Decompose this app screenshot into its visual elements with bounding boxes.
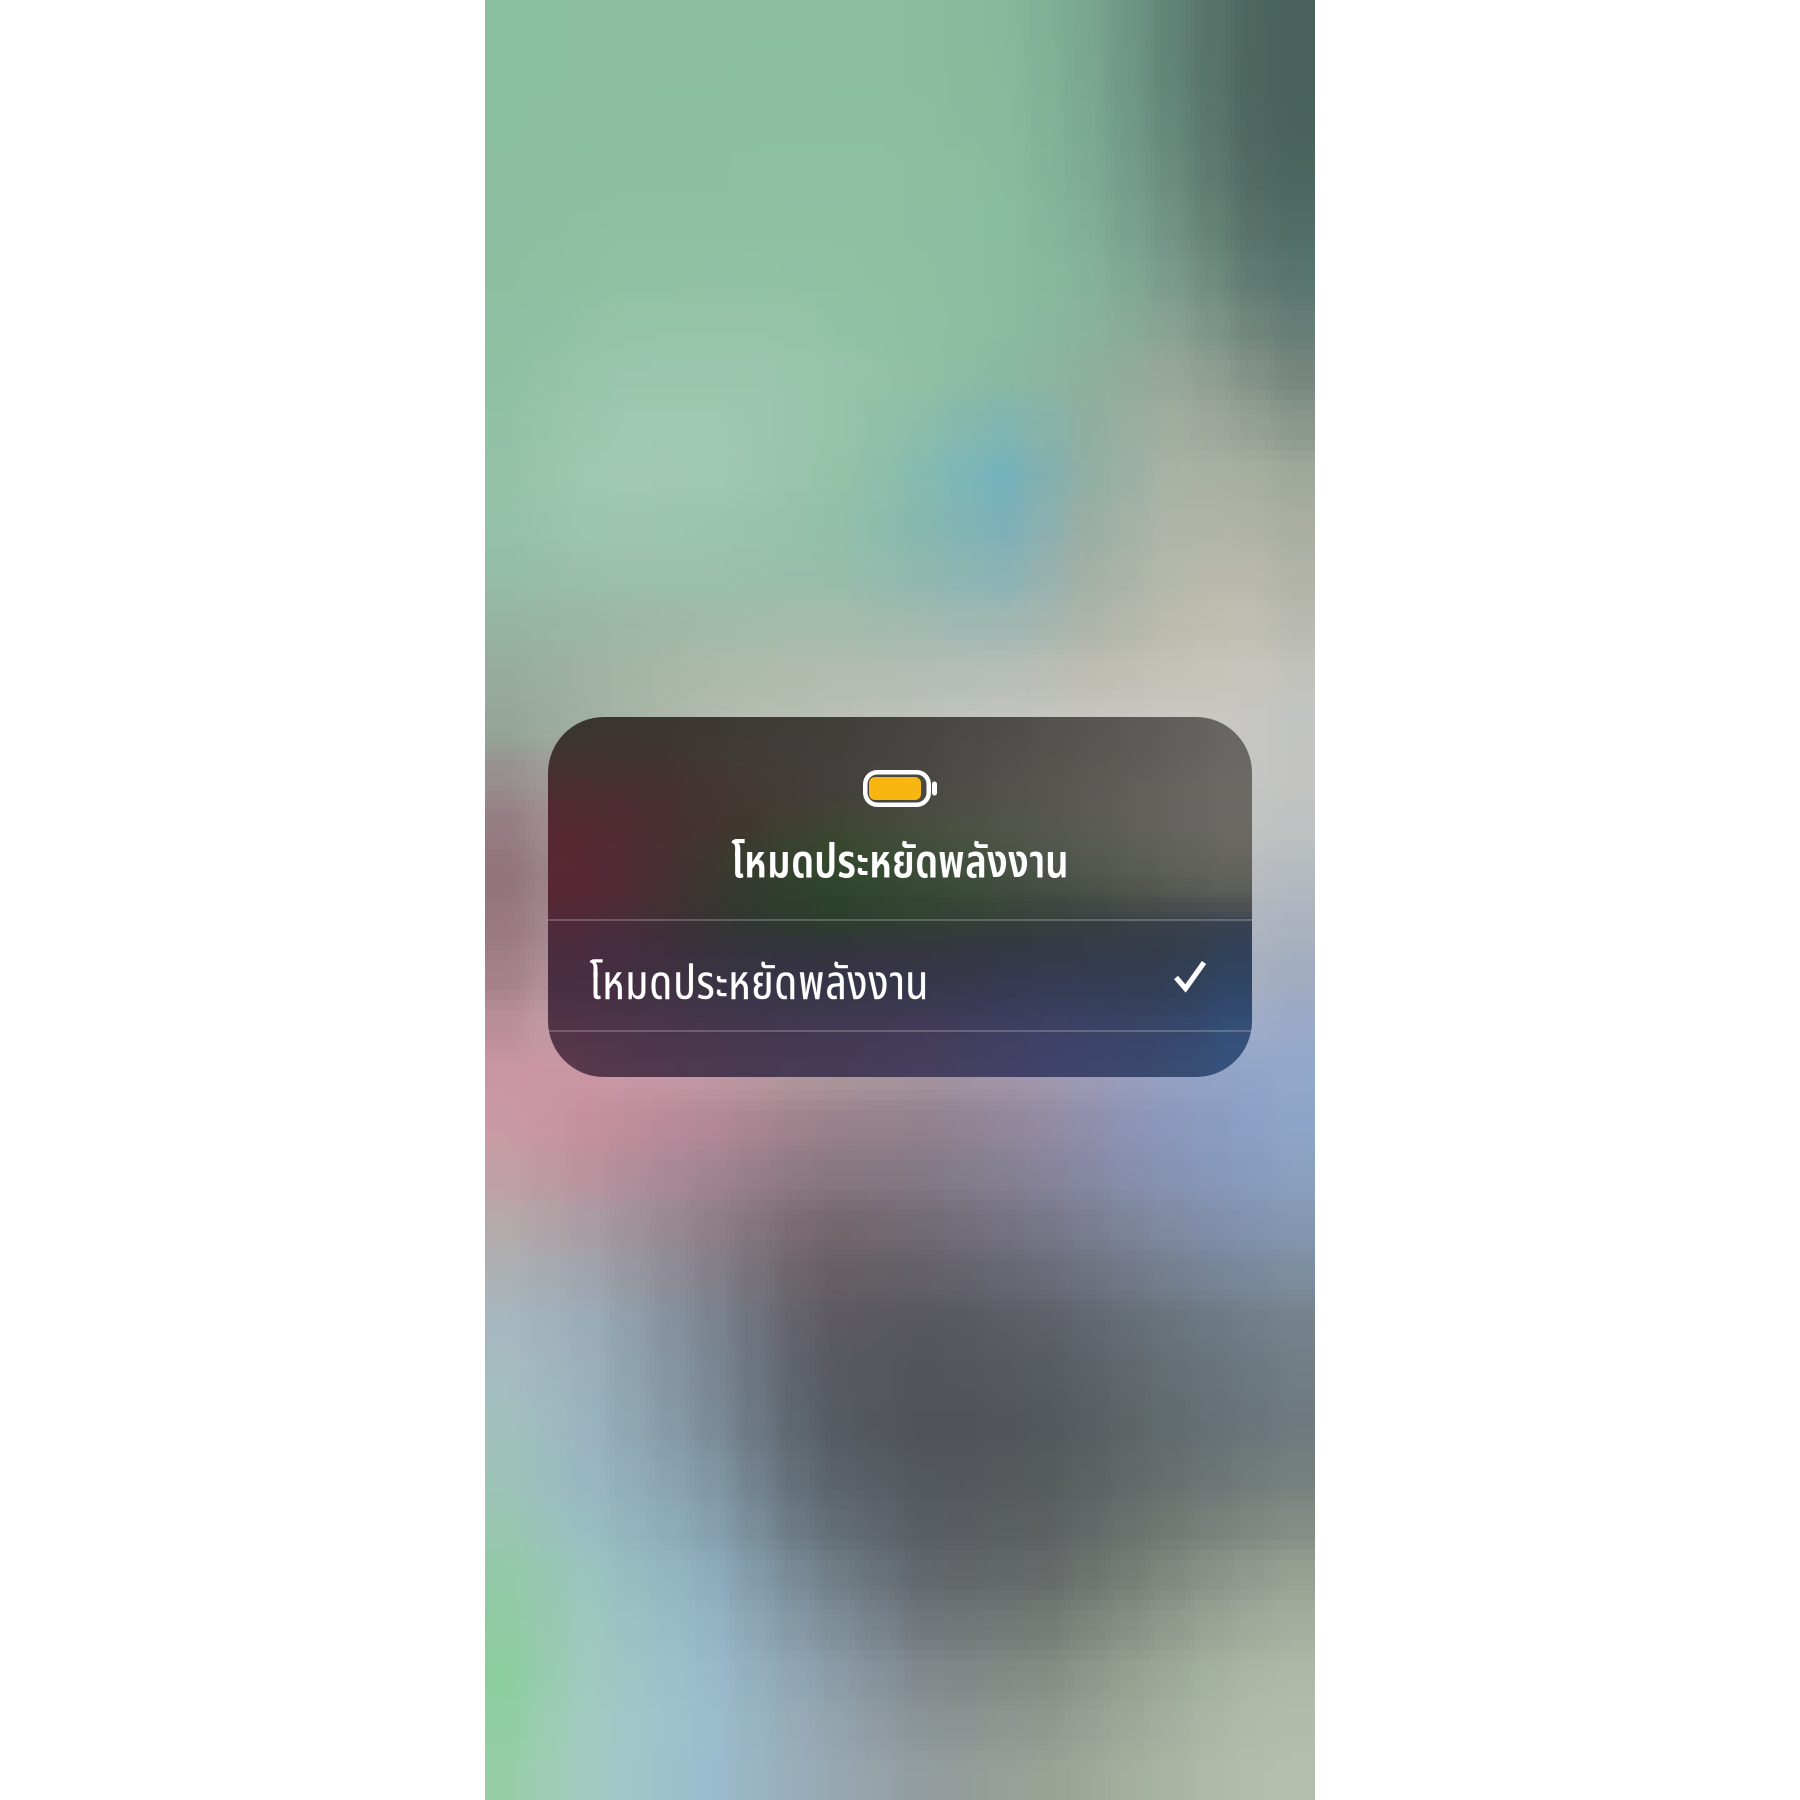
button[interactable]: โหมดประหยัดพลังงาน [548, 921, 1252, 1030]
staticText: โหมดประหยัดพลังงาน [589, 948, 929, 1021]
button[interactable]: โหมดประหยัดพลังงาน [548, 717, 1252, 919]
button[interactable]: More options [548, 1032, 1252, 1077]
staticText: โหมดประหยัดพลังงาน [731, 829, 1069, 897]
